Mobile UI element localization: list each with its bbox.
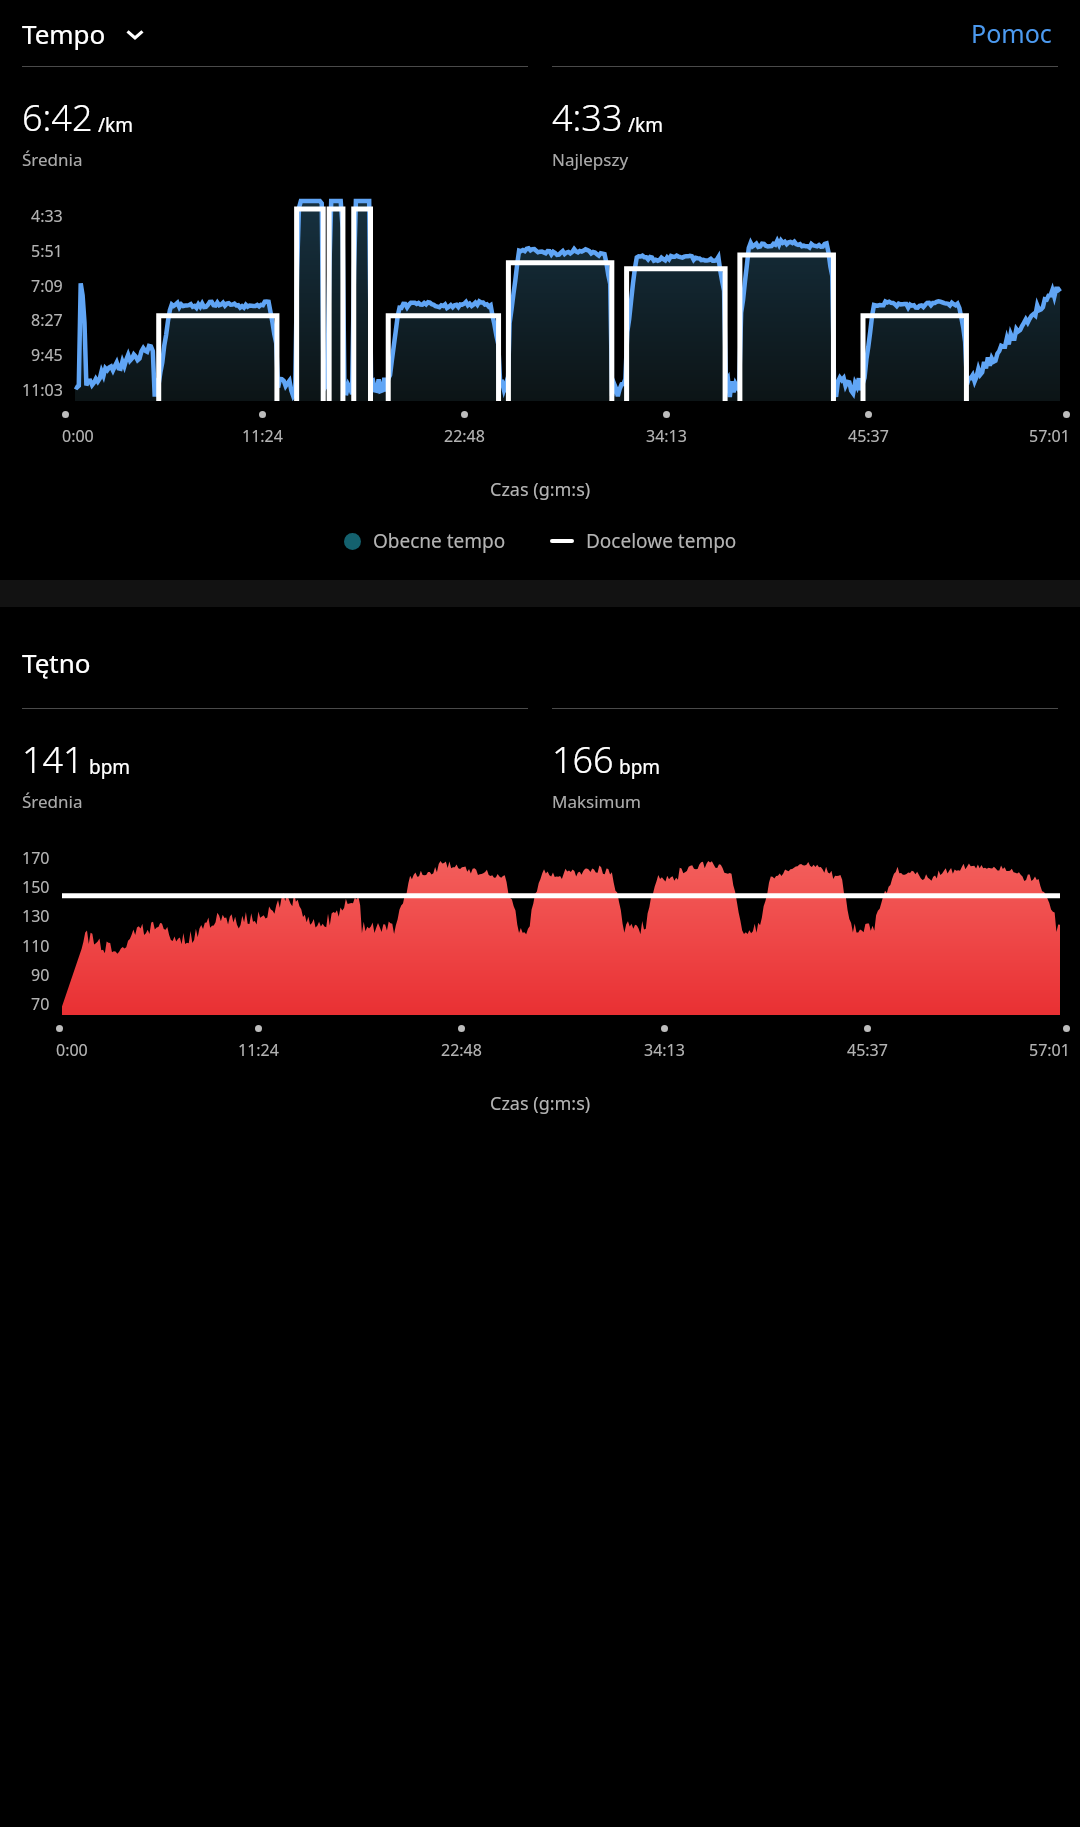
staticText: Maksimum	[552, 790, 641, 813]
staticText: /km	[628, 112, 663, 138]
staticText: 0:00	[56, 1039, 88, 1061]
staticText: 5:51	[31, 240, 63, 262]
staticText: 141	[22, 735, 84, 784]
staticText: 34:13	[644, 1039, 685, 1061]
staticText: Tętno	[22, 645, 91, 680]
staticText: Docelowe tempo	[586, 528, 737, 554]
staticText: 22:48	[444, 425, 485, 447]
staticText: 45:37	[847, 1039, 888, 1061]
staticText: 90	[31, 964, 50, 986]
staticText: 4:33	[552, 93, 623, 142]
staticText: 4:33	[31, 205, 63, 227]
other: Zmień wykres	[124, 23, 146, 45]
staticText: 57:01	[1029, 1039, 1070, 1061]
button[interactable]: Tempo	[22, 16, 154, 51]
staticText: 45:37	[848, 425, 889, 447]
staticText: 34:13	[646, 425, 687, 447]
staticText: Średnia	[22, 790, 83, 813]
staticText: Średnia	[22, 148, 83, 171]
staticText: Obecne tempo	[373, 528, 506, 554]
staticText: Najlepszy	[552, 148, 629, 171]
staticText: 6:42	[22, 93, 93, 142]
staticText: 9:45	[31, 344, 63, 366]
staticText: 150	[22, 876, 50, 898]
staticText: 7:09	[31, 275, 63, 297]
staticText: 130	[22, 905, 50, 927]
staticText: 0:00	[62, 425, 94, 447]
button[interactable]: Docelowe tempo	[546, 524, 741, 558]
staticText: 57:01	[1029, 425, 1070, 447]
button[interactable]: Pomoc	[965, 10, 1058, 56]
staticText: Czas (g:m:s)	[490, 477, 591, 502]
button[interactable]: Obecne tempo	[340, 524, 510, 558]
staticText: bpm	[89, 754, 131, 780]
staticText: Pomoc	[971, 16, 1052, 50]
staticText: Czas (g:m:s)	[490, 1091, 591, 1116]
staticText: 110	[22, 935, 50, 957]
staticText: 70	[31, 993, 50, 1015]
staticText: 166	[552, 735, 614, 784]
staticText: 8:27	[31, 309, 63, 331]
staticText: 22:48	[441, 1039, 482, 1061]
staticText: Tempo	[22, 16, 106, 51]
staticText: 170	[22, 847, 50, 869]
staticText: 11:03	[22, 379, 63, 401]
staticText: 11:24	[242, 425, 283, 447]
staticText: 11:24	[238, 1039, 279, 1061]
staticText: bpm	[619, 754, 661, 780]
staticText: /km	[98, 112, 133, 138]
